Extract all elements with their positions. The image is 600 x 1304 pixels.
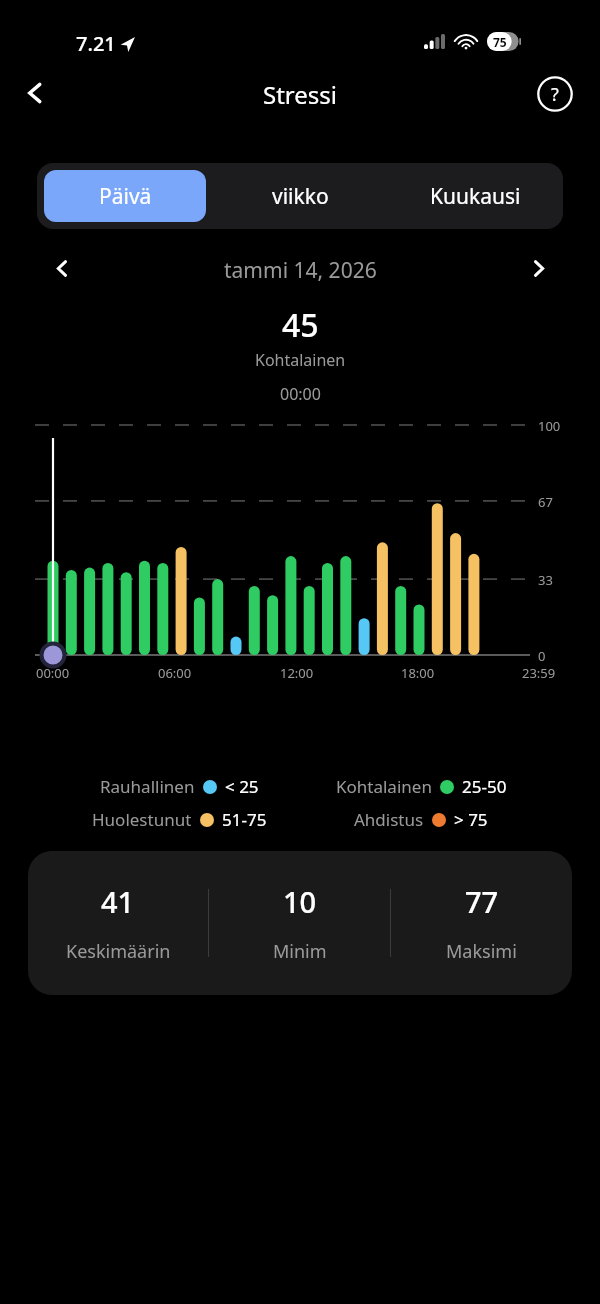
staticText: 7.21	[76, 30, 116, 57]
staticText: < 25	[225, 775, 259, 798]
staticText: 75	[493, 34, 507, 50]
staticText: viikko	[272, 182, 329, 211]
staticText: Huolestunut	[92, 808, 192, 831]
button[interactable]: Kuukausi	[395, 170, 556, 222]
staticText: ?	[551, 82, 559, 107]
staticText: Kohtalainen	[255, 349, 346, 371]
staticText: 45	[282, 303, 319, 347]
staticText: 23:59	[522, 664, 556, 682]
staticText: Kohtalainen	[336, 775, 432, 798]
staticText: 51-75	[222, 808, 267, 831]
staticText: 77	[465, 882, 499, 921]
staticText: Maksimi	[446, 939, 517, 964]
staticText: Minim	[273, 939, 327, 964]
staticText: 41	[101, 882, 135, 921]
staticText: 100	[538, 417, 561, 435]
button[interactable]: viikko	[220, 170, 381, 222]
staticText: 0	[538, 647, 546, 665]
button[interactable]: Help	[531, 70, 579, 118]
staticText: 18:00	[401, 664, 435, 682]
staticText: Stressi	[263, 78, 337, 111]
staticText: 00:00	[280, 383, 321, 405]
staticText: Ahdistus	[354, 808, 424, 831]
staticText: Keskimäärin	[66, 939, 171, 964]
staticText: > 75	[454, 808, 488, 831]
button[interactable]: 41	[28, 851, 572, 995]
staticText: Kuukausi	[430, 182, 521, 211]
button[interactable]: Päivä	[44, 170, 206, 222]
staticText: 25-50	[462, 775, 507, 798]
staticText: Rauhallinen	[100, 775, 195, 798]
staticText: Päivä	[99, 182, 152, 211]
staticText: 10	[283, 882, 317, 921]
staticText: 06:00	[158, 664, 192, 682]
button[interactable]: Back	[12, 70, 58, 116]
staticText: 00:00	[36, 664, 70, 682]
staticText: tammi 14, 2026	[224, 256, 377, 285]
staticText: 67	[538, 493, 553, 511]
staticText: 12:00	[280, 664, 314, 682]
button[interactable]: Next day	[518, 248, 558, 288]
staticText: 33	[538, 571, 553, 589]
button[interactable]: Previous day	[42, 248, 82, 288]
